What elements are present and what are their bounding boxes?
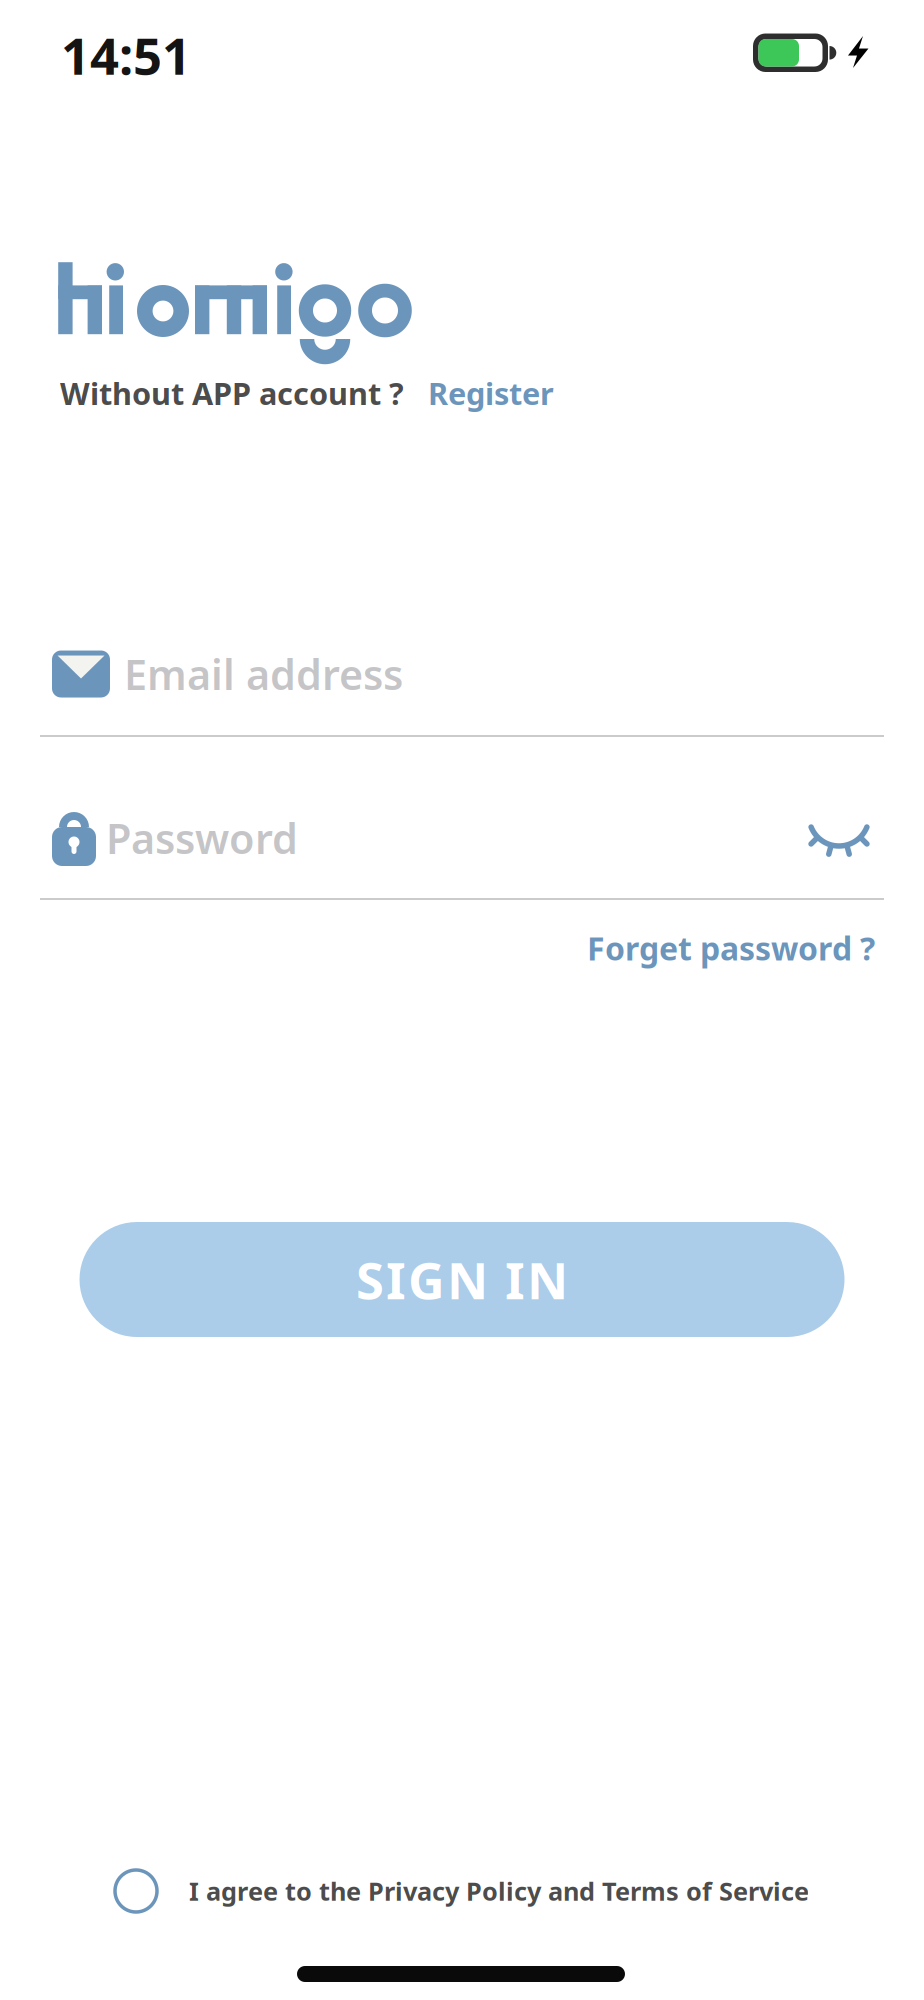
button[interactable]: Register	[428, 373, 554, 413]
staticText: Without APP account ?	[60, 373, 404, 413]
button[interactable]	[807, 820, 871, 858]
button[interactable]: Email address	[40, 629, 884, 719]
staticText: SIGN IN	[356, 1246, 568, 1313]
staticText: I agree to the Privacy Policy and Terms …	[189, 1874, 809, 1908]
staticText: 14:51	[61, 21, 191, 89]
staticText: Email address	[124, 647, 403, 701]
button[interactable]: Password	[40, 792, 884, 884]
button[interactable]: Forget password ?	[0, 927, 924, 969]
button[interactable]: I agree to the Privacy Policy and Terms …	[115, 1870, 809, 1912]
staticText: Forget password ?	[587, 927, 875, 969]
button[interactable]: SIGN IN	[79, 1222, 844, 1337]
staticText: Register	[428, 373, 554, 413]
staticText: Password	[106, 811, 298, 865]
